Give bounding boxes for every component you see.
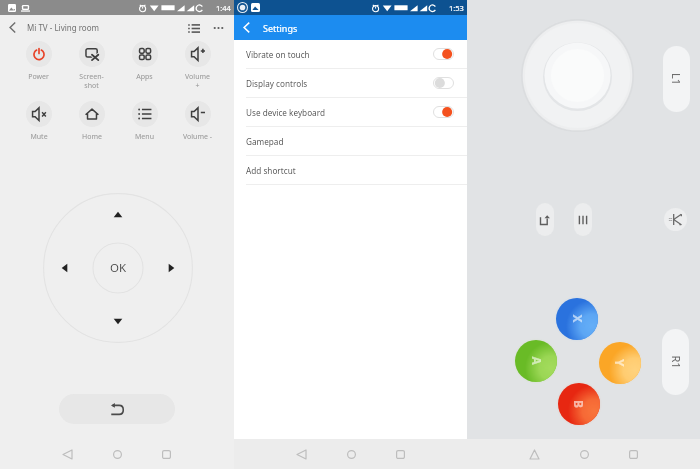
button[interactable]: L1	[663, 46, 690, 112]
button[interactable]: Recents	[386, 439, 414, 469]
button[interactable]: R1	[662, 329, 689, 395]
button[interactable]: Device list	[183, 17, 205, 39]
button[interactable]: Back	[234, 15, 259, 40]
staticText: Settings	[263, 22, 298, 34]
button[interactable]: Volume +	[171, 41, 224, 90]
button[interactable]: Select	[536, 203, 554, 236]
staticText: L1	[669, 73, 684, 86]
staticText: Home	[82, 132, 102, 142]
button[interactable]: Menu	[118, 101, 171, 142]
staticText: Apps	[136, 72, 153, 82]
staticText: Menu	[135, 132, 154, 142]
button[interactable]: X	[556, 298, 598, 340]
button[interactable]: Recents	[619, 439, 647, 469]
button[interactable]: Home	[570, 439, 598, 469]
button[interactable]: Add shortcut	[234, 156, 467, 185]
button[interactable]: Screen- shot	[65, 41, 118, 90]
button[interactable]: Home	[103, 439, 131, 469]
staticText: Vibrate on touch	[246, 49, 310, 60]
button[interactable]: Back	[59, 394, 175, 424]
button[interactable]: Mute	[12, 101, 65, 142]
staticText: 1:53	[449, 3, 464, 13]
staticText: R1	[668, 355, 683, 369]
staticText: Mi TV - Living room	[27, 22, 100, 33]
button[interactable]: Recents	[152, 439, 180, 469]
staticText: Y	[612, 359, 628, 367]
button[interactable]: Directional pad	[43, 193, 193, 343]
button[interactable]: Use device keyboard	[234, 98, 467, 127]
button[interactable]: Keyboard	[664, 208, 687, 231]
button[interactable]: Gamepad	[234, 127, 467, 156]
button[interactable]: Joystick	[521, 19, 634, 132]
staticText: Display controls	[246, 78, 308, 89]
staticText: A	[528, 356, 544, 365]
staticText: X	[569, 314, 585, 323]
staticText: Power	[28, 72, 49, 82]
button[interactable]: Back	[287, 439, 315, 469]
staticText: Volume +	[185, 72, 210, 90]
button[interactable]: Home	[65, 101, 118, 142]
button[interactable]: B	[558, 383, 600, 425]
button[interactable]: A	[515, 340, 557, 382]
staticText: Mute	[30, 132, 48, 142]
staticText: Add shortcut	[246, 165, 296, 176]
staticText: Use device keyboard	[246, 107, 325, 118]
button[interactable]: Back	[520, 439, 548, 469]
staticText: OK	[110, 260, 127, 276]
staticText: Gamepad	[246, 136, 284, 147]
button[interactable]: Home	[337, 439, 365, 469]
staticText: B	[571, 400, 587, 408]
button[interactable]: Y	[599, 342, 641, 384]
button[interactable]: Back	[53, 439, 81, 469]
button[interactable]: Menu	[574, 203, 592, 236]
staticText: Volume -	[183, 132, 212, 142]
button[interactable]: Back	[0, 15, 25, 40]
button[interactable]: Power	[12, 41, 65, 82]
staticText: 1:44	[216, 3, 231, 13]
button[interactable]: Volume -	[171, 101, 224, 142]
staticText: Screen- shot	[79, 72, 104, 90]
button[interactable]: Apps	[118, 41, 171, 82]
button[interactable]: Display controls	[234, 69, 467, 98]
button[interactable]: Vibrate on touch	[234, 40, 467, 69]
button[interactable]: More options	[207, 17, 229, 39]
